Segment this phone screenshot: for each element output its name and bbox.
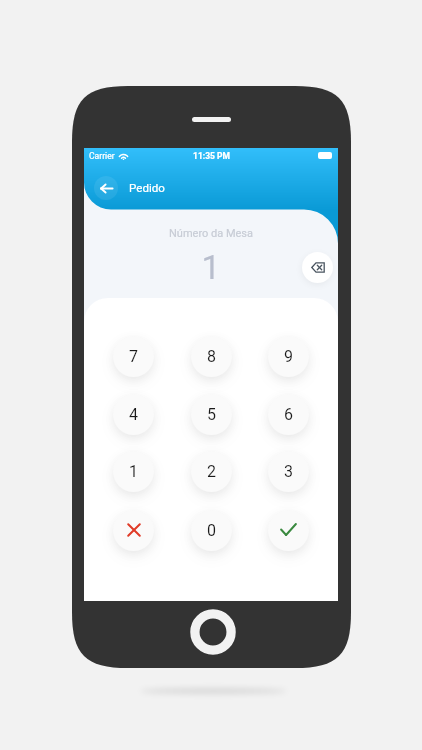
- staticText: 1: [129, 462, 138, 481]
- staticText: 5: [207, 405, 216, 424]
- button[interactable]: 7: [113, 336, 154, 377]
- staticText: 4: [129, 405, 138, 424]
- button[interactable]: 8: [191, 336, 232, 377]
- staticText: 0: [207, 521, 216, 540]
- button[interactable]: 5: [191, 394, 232, 435]
- button[interactable]: 6: [268, 394, 309, 435]
- staticText: Pedido: [129, 181, 165, 195]
- button[interactable]: Back: [94, 176, 118, 200]
- button[interactable]: 2: [191, 451, 232, 492]
- staticText: 11:35 PM: [193, 151, 230, 161]
- staticText: 1: [84, 248, 338, 287]
- button[interactable]: 9: [268, 336, 309, 377]
- button[interactable]: 3: [268, 451, 309, 492]
- button[interactable]: 4: [113, 394, 154, 435]
- staticText: 8: [207, 347, 216, 366]
- button[interactable]: Backspace: [302, 252, 333, 283]
- staticText: 6: [284, 405, 293, 424]
- staticText: 9: [284, 347, 293, 366]
- staticText: Carrier: [89, 151, 115, 161]
- button[interactable]: 1: [113, 451, 154, 492]
- staticText: Número da Mesa: [84, 227, 338, 240]
- button[interactable]: Cancel: [113, 510, 154, 551]
- staticText: 3: [284, 462, 293, 481]
- button[interactable]: 0: [191, 510, 232, 551]
- staticText: 2: [207, 462, 216, 481]
- staticText: 7: [129, 347, 138, 366]
- button[interactable]: Confirm: [268, 510, 309, 551]
